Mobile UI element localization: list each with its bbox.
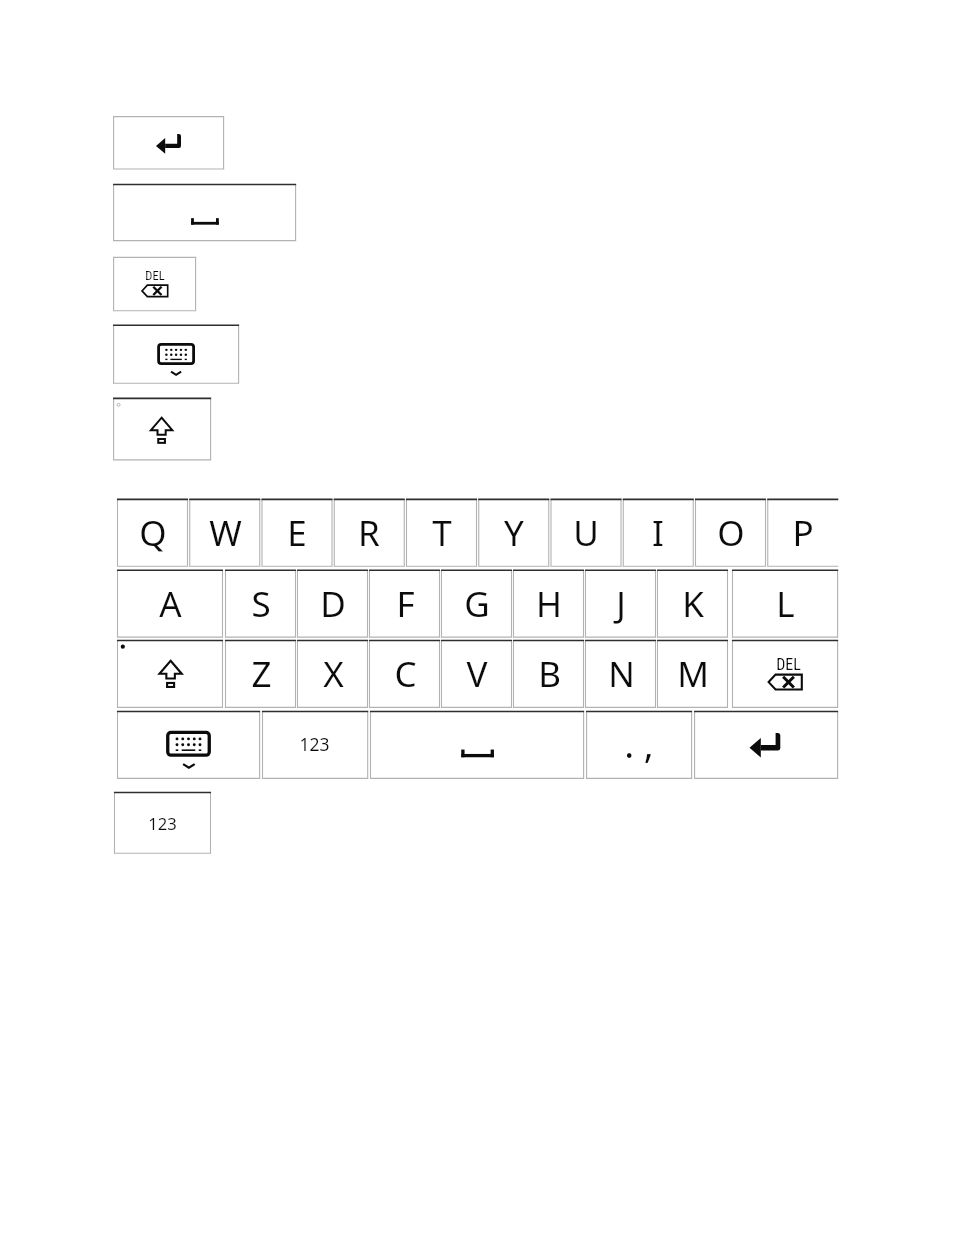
staticText: A [159, 580, 182, 628]
staticText: L [776, 580, 795, 628]
button[interactable]: W [190, 499, 260, 566]
staticText: X [323, 650, 344, 698]
staticText: Y [504, 509, 524, 557]
button[interactable]: M [658, 640, 728, 707]
staticText: F [396, 580, 415, 628]
staticText: B [538, 650, 561, 698]
staticText: C [394, 650, 417, 698]
staticText: M [677, 650, 709, 698]
button[interactable]: Hide keyboard [118, 711, 260, 778]
staticText: J [616, 580, 626, 628]
button[interactable]: D [298, 570, 368, 637]
staticText: U [573, 509, 599, 557]
staticText: R [358, 509, 380, 557]
button[interactable]: E [262, 499, 332, 566]
button[interactable]: K [658, 570, 728, 637]
button[interactable]: S [226, 570, 296, 637]
staticText: I [652, 509, 664, 557]
button[interactable]: T [407, 499, 477, 566]
button[interactable]: R [334, 499, 404, 566]
button[interactable]: O [696, 499, 766, 566]
button[interactable]: Delete [114, 257, 196, 310]
button[interactable]: . , [587, 711, 692, 778]
button[interactable]: N [586, 640, 656, 707]
staticText: . , [624, 718, 654, 768]
staticText: V [466, 650, 488, 698]
button[interactable]: Enter [114, 117, 224, 169]
button[interactable]: Y [479, 499, 549, 566]
staticText: D [320, 580, 346, 628]
button[interactable]: Shift [118, 640, 223, 707]
button[interactable]: G [442, 570, 512, 637]
button[interactable]: U [551, 499, 621, 566]
staticText: S [251, 580, 271, 628]
button[interactable]: 123 [115, 792, 211, 853]
button[interactable]: Space [114, 184, 296, 240]
button[interactable]: X [298, 640, 368, 707]
button[interactable]: F [370, 570, 440, 637]
button[interactable]: Z [226, 640, 296, 707]
button[interactable]: L [733, 570, 838, 637]
staticText: 123 [148, 812, 177, 835]
button[interactable]: Q [118, 499, 188, 566]
staticText: DEL [145, 268, 165, 283]
staticText: K [682, 580, 704, 628]
staticText: H [536, 580, 562, 628]
button[interactable]: C [370, 640, 440, 707]
staticText: DEL [776, 655, 801, 674]
button[interactable]: J [586, 570, 656, 637]
staticText: Z [251, 650, 272, 698]
button[interactable]: Hide keyboard [114, 325, 239, 383]
staticText: E [287, 509, 307, 557]
button[interactable]: Delete [733, 640, 838, 707]
button[interactable]: P [768, 499, 838, 566]
button[interactable]: 123 [263, 711, 368, 778]
button[interactable]: V [442, 640, 512, 707]
staticText: W [209, 509, 242, 557]
button[interactable]: H [514, 570, 584, 637]
staticText: T [432, 509, 452, 557]
button[interactable]: Shift [114, 398, 211, 460]
button[interactable]: I [623, 499, 693, 566]
staticText: G [464, 580, 490, 628]
staticText: O [717, 509, 745, 557]
staticText: P [792, 509, 814, 557]
button[interactable]: A [118, 570, 223, 637]
button[interactable]: B [514, 640, 584, 707]
staticText: 123 [299, 732, 330, 756]
staticText: N [608, 650, 635, 698]
button[interactable]: Enter [695, 711, 838, 778]
button[interactable]: Space [371, 711, 584, 778]
staticText: Q [139, 509, 167, 557]
